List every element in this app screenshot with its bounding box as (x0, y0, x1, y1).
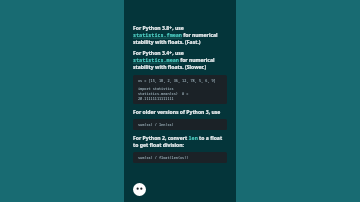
staticText: sum(xs) / len(xs) (138, 122, 174, 127)
button[interactable]: sum(xs) / len(xs) (133, 119, 227, 130)
staticText: statistics.mean(xs) # = 20.1111111111111… (138, 91, 222, 101)
button[interactable]: xs = [15, 18, 2, 36, 12, 78, 5, 6, 9] (133, 75, 227, 104)
staticText: import statistics (138, 86, 174, 91)
staticText: For Python 2, convert len to a float to … (133, 135, 227, 149)
staticText: For Python 3.8+, use statistics.fmean fo… (133, 25, 227, 46)
staticText: xs = [15, 18, 2, 36, 12, 78, 5, 6, 9] (138, 78, 216, 83)
staticText: For Python 3.4+, use statistics.mean for… (133, 50, 227, 71)
staticText: For older versions of Python 3, use (133, 109, 221, 116)
button[interactable]: User avatar (133, 183, 146, 196)
button[interactable]: sum(xs) / float(len(xs)) (133, 152, 227, 163)
staticText: sum(xs) / float(len(xs)) (138, 155, 189, 160)
